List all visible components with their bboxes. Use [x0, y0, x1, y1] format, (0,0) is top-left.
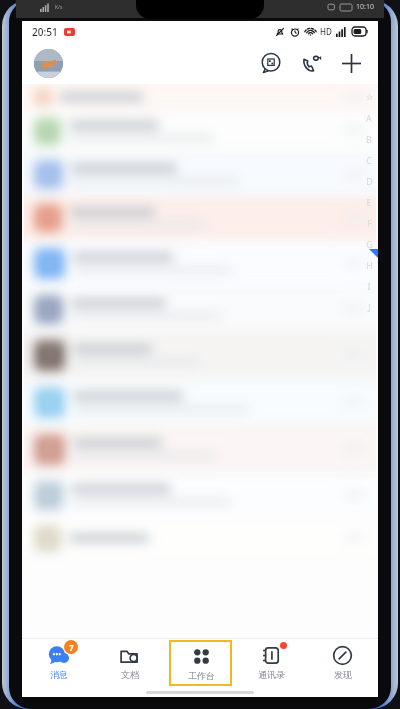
- staticText: 7: [69, 642, 74, 653]
- button[interactable]: F: [360, 212, 378, 233]
- button[interactable]: Video call: [296, 48, 326, 78]
- button[interactable]: H: [360, 254, 378, 275]
- button[interactable]: 工作台: [171, 641, 231, 685]
- staticText: 发现: [334, 669, 352, 680]
- staticText: 10:10: [356, 2, 374, 12]
- button[interactable]: E: [360, 191, 378, 212]
- button[interactable]: 文档: [119, 645, 140, 680]
- staticText: K/s: [55, 4, 63, 11]
- staticText: H: [366, 259, 373, 271]
- staticText: I: [367, 280, 371, 292]
- button[interactable]: C: [360, 149, 378, 170]
- staticText: B: [366, 133, 372, 145]
- button[interactable]: B: [360, 128, 378, 149]
- button[interactable]: G: [360, 233, 378, 254]
- button[interactable]: ☆: [360, 86, 378, 107]
- button[interactable]: A: [360, 107, 378, 128]
- staticText: ☆: [365, 92, 374, 102]
- button[interactable]: Add: [336, 48, 366, 78]
- button[interactable]: Profile avatar: [34, 49, 63, 78]
- button[interactable]: D: [360, 170, 378, 191]
- staticText: 消息: [50, 669, 68, 680]
- staticText: C: [366, 154, 372, 166]
- staticText: 20:51: [32, 25, 58, 39]
- button[interactable]: 发现: [332, 645, 353, 680]
- staticText: D: [366, 175, 373, 187]
- button[interactable]: Scan QR code: [256, 48, 286, 78]
- button[interactable]: 通讯录: [258, 645, 285, 680]
- staticText: F: [367, 217, 372, 229]
- button[interactable]: I: [360, 275, 378, 296]
- staticText: G: [366, 238, 373, 250]
- staticText: A: [366, 112, 372, 124]
- button[interactable]: J: [360, 296, 378, 317]
- staticText: HD: [320, 26, 332, 37]
- button[interactable]: 7: [48, 645, 69, 680]
- staticText: 通讯录: [258, 669, 285, 680]
- staticText: 工作台: [188, 670, 215, 681]
- staticText: J: [368, 301, 371, 313]
- staticText: E: [366, 196, 372, 208]
- staticText: 文档: [121, 669, 139, 680]
